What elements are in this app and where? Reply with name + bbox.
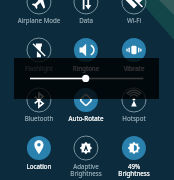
button[interactable]: Vibrate bbox=[110, 36, 158, 80]
button[interactable]: Mobile Data bbox=[62, 0, 110, 32]
button[interactable]: Flashlight bbox=[15, 36, 63, 80]
button[interactable]: Brightness 49 percent bbox=[110, 134, 158, 178]
staticText: Flashlight bbox=[15, 64, 63, 72]
button[interactable]: Location bbox=[15, 134, 63, 178]
button[interactable]: Ringtone bbox=[62, 36, 110, 80]
button[interactable]: Adaptive Brightness bbox=[62, 134, 110, 178]
button[interactable]: Auto-Rotate bbox=[62, 86, 110, 130]
button[interactable]: Volume slider bbox=[14, 58, 159, 99]
button[interactable]: Airplane Mode bbox=[15, 0, 63, 32]
staticText: Airplane Mode bbox=[15, 16, 63, 24]
staticText: Ringtone bbox=[62, 64, 110, 72]
staticText: Adaptive Brightness bbox=[62, 162, 110, 177]
staticText: Data bbox=[62, 16, 110, 24]
staticText: Auto-Rotate bbox=[62, 114, 110, 122]
staticText: Location bbox=[15, 162, 63, 170]
button[interactable]: Bluetooth bbox=[15, 86, 63, 130]
staticText: Bluetooth bbox=[15, 114, 63, 122]
staticText: Hotspot bbox=[110, 114, 158, 122]
staticText: 49% Brightness bbox=[110, 162, 158, 177]
button[interactable]: Hotspot bbox=[110, 86, 158, 130]
button[interactable]: Wi-Fi bbox=[110, 0, 158, 32]
staticText: Wi-Fi bbox=[110, 16, 158, 24]
staticText: Vibrate bbox=[110, 64, 158, 72]
